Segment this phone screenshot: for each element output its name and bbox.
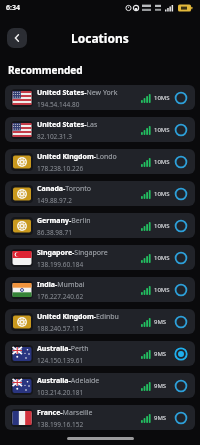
staticText: 138.199.16.152 [37, 420, 84, 429]
staticText: 10MS [154, 126, 170, 134]
button[interactable]: Singapore-Singapore [5, 245, 195, 270]
staticText: 9MS [154, 350, 167, 358]
staticText: Australia-Perth [37, 344, 89, 354]
staticText: 9MS [154, 414, 167, 422]
staticText: 178.238.10.226 [37, 164, 84, 173]
staticText: United Kingdom-Edinbu [37, 312, 119, 322]
staticText: 86.38.98.71 [37, 228, 72, 237]
button[interactable]: Australia-Perth [5, 341, 195, 366]
staticText: France-Marseille [37, 408, 93, 418]
staticText: 10MS [154, 190, 170, 198]
staticText: 10MS [154, 286, 170, 294]
staticText: Australia-Adelaide [37, 376, 100, 386]
button[interactable]: United States-New York [5, 85, 195, 110]
staticText: United Kingdom-Londo [37, 152, 117, 162]
button[interactable]: United States-Las [5, 117, 195, 142]
staticText: 9MS [154, 318, 167, 326]
staticText: 10MS [154, 222, 170, 230]
button[interactable]: Germany-Berlin [5, 213, 195, 238]
staticText: 10MS [154, 94, 170, 102]
staticText: 194.54.144.80 [37, 100, 80, 109]
button[interactable]: India-Mumbai [5, 277, 195, 302]
button[interactable]: Canada-Toronto [5, 181, 195, 206]
staticText: India-Mumbai [37, 280, 85, 290]
staticText: Singapore-Singapore [37, 248, 108, 258]
staticText: 9MS [154, 382, 167, 390]
staticText: 6:34 [6, 3, 20, 13]
staticText: United States-New York [37, 88, 118, 98]
staticText: Recommended [8, 63, 83, 77]
staticText: 124.150.139.61 [37, 356, 84, 365]
button[interactable]: France-Marseille [5, 405, 195, 430]
button[interactable]: Australia-Adelaide [5, 373, 195, 398]
button[interactable]: United Kingdom-Edinbu [5, 309, 195, 334]
button[interactable] [7, 28, 27, 48]
staticText: 82.102.31.3 [37, 132, 72, 141]
staticText: 10MS [154, 158, 170, 166]
staticText: 149.88.97.2 [37, 196, 72, 205]
staticText: Locations [71, 30, 129, 46]
staticText: 188.240.57.113 [37, 324, 84, 333]
button[interactable]: United Kingdom-Londo [5, 149, 195, 174]
staticText: Canada-Toronto [37, 184, 91, 194]
staticText: 10MS [154, 254, 170, 262]
staticText: United States-Las [37, 120, 98, 130]
staticText: 103.214.20.181 [37, 388, 84, 397]
staticText: 138.199.60.184 [37, 260, 84, 269]
staticText: 176.227.240.62 [37, 292, 84, 301]
staticText: Germany-Berlin [37, 216, 91, 226]
